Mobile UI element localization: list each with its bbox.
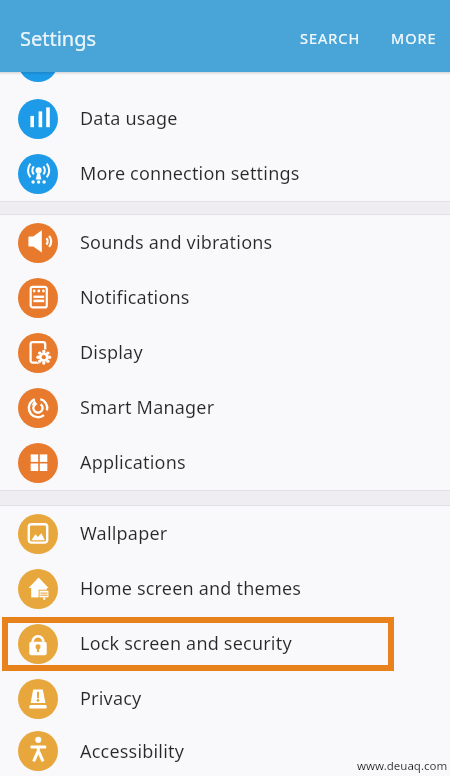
staticText: Smart Manager [80, 395, 215, 420]
button[interactable]: Lock screen and security [0, 616, 450, 671]
button[interactable]: Display [0, 325, 450, 380]
staticText: Notifications [80, 285, 190, 310]
staticText: MORE [391, 28, 437, 48]
staticText: Accessibility [80, 739, 185, 764]
button[interactable]: Data usage [0, 91, 450, 146]
staticText: Settings [20, 25, 97, 52]
staticText: Lock screen and security [80, 631, 292, 656]
staticText: SEARCH [300, 28, 361, 48]
button[interactable]: Applications [0, 435, 450, 490]
button[interactable]: MORE [387, 24, 441, 52]
staticText: Sounds and vibrations [80, 230, 273, 255]
staticText: www.deuaq.com [357, 758, 448, 774]
button[interactable]: Notifications [0, 270, 450, 325]
staticText: Display [80, 340, 143, 365]
button[interactable]: More connection settings [0, 146, 450, 201]
staticText: Wallpaper [80, 521, 168, 546]
button[interactable]: Home screen and themes [0, 561, 450, 616]
staticText: Data usage [80, 106, 178, 131]
button[interactable]: Accessibility [0, 726, 450, 776]
button[interactable]: Smart Manager [0, 380, 450, 435]
staticText: Applications [80, 450, 186, 475]
staticText: More connection settings [80, 161, 300, 186]
button[interactable]: SEARCH [296, 24, 365, 52]
button[interactable]: Privacy [0, 671, 450, 726]
button[interactable]: Wallpaper [0, 506, 450, 561]
button[interactable]: Sounds and vibrations [0, 215, 450, 270]
staticText: Privacy [80, 686, 142, 711]
staticText: Home screen and themes [80, 576, 302, 601]
